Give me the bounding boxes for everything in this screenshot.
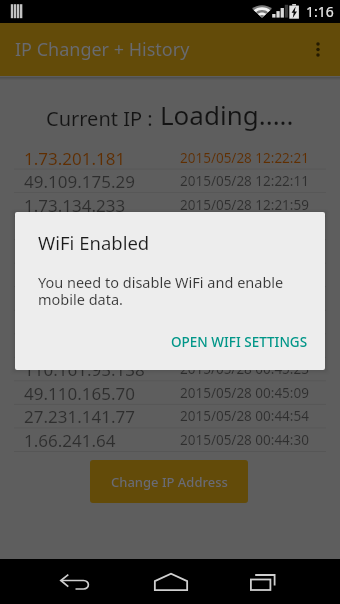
button[interactable]: Change IP Address: [90, 460, 248, 503]
button[interactable]: 1.38.20.196: [0, 287, 340, 311]
staticText: 2015/05/28 00:44:30: [180, 431, 309, 449]
button[interactable]: OPEN WIFI SETTINGS: [163, 327, 316, 357]
button[interactable]: Back: [48, 560, 104, 604]
button[interactable]: 49.110.14.92: [0, 310, 340, 334]
button[interactable]: 49.109.145.87: [0, 216, 340, 240]
button[interactable]: 49.110.165.70: [0, 381, 340, 405]
staticText: Change IP Address: [111, 473, 228, 491]
staticText: 2015/05/28 00:45:09: [180, 384, 309, 402]
staticText: 1.73.201.181: [24, 147, 126, 170]
button[interactable]: 49.109.175.29: [0, 169, 340, 193]
staticText: 49.109.175.29: [24, 170, 135, 193]
button[interactable]: 1.73.201.181: [0, 146, 340, 170]
button[interactable]: More options: [296, 23, 340, 76]
staticText: 2015/05/28 00:45:23: [180, 360, 309, 378]
staticText: 1:16: [306, 2, 334, 21]
staticText: 2015/05/28 12:22:11: [180, 172, 309, 190]
staticText: 27.231.17.211: [24, 264, 135, 287]
staticText: 2015/05/28 00:45:38: [180, 337, 309, 355]
button[interactable]: 1.73.229.72: [0, 240, 340, 264]
button[interactable]: 110.161.95.138: [0, 357, 340, 381]
staticText: 49.110.165.70: [24, 382, 135, 405]
button[interactable]: Recent apps: [236, 559, 292, 604]
staticText: 1.38.20.196: [24, 288, 116, 311]
staticText: 2015/05/28 00:44:54: [180, 407, 309, 425]
staticText: Loading.....: [160, 97, 294, 132]
staticText: 2015/05/28 12:21:59: [180, 196, 309, 214]
staticText: 1.66.241.64: [24, 429, 116, 452]
button[interactable]: 1.66.241.64: [0, 428, 340, 452]
staticText: 1.73.134.233: [24, 194, 126, 217]
staticText: You need to disable WiFi and enable mobi…: [38, 272, 300, 309]
staticText: 49.109.145.87: [24, 217, 135, 240]
staticText: 2015/05/28 00:46:41: [180, 266, 309, 284]
staticText: Current IP :: [46, 105, 153, 132]
button[interactable]: 1.39.33.180: [0, 334, 340, 358]
staticText: 2015/05/28 12:22:21: [180, 149, 309, 167]
staticText: 1.73.229.72: [24, 241, 116, 264]
staticText: 110.161.95.138: [24, 358, 145, 381]
button[interactable]: Home: [143, 559, 199, 604]
staticText: WiFi Enabled: [38, 230, 150, 255]
button[interactable]: 27.231.17.211: [0, 263, 340, 287]
staticText: IP Changer + History: [15, 37, 190, 62]
staticText: OPEN WIFI SETTINGS: [171, 333, 308, 351]
button[interactable]: 27.231.141.77: [0, 404, 340, 428]
staticText: 27.231.141.77: [24, 405, 135, 428]
button[interactable]: 1.73.134.233: [0, 193, 340, 217]
